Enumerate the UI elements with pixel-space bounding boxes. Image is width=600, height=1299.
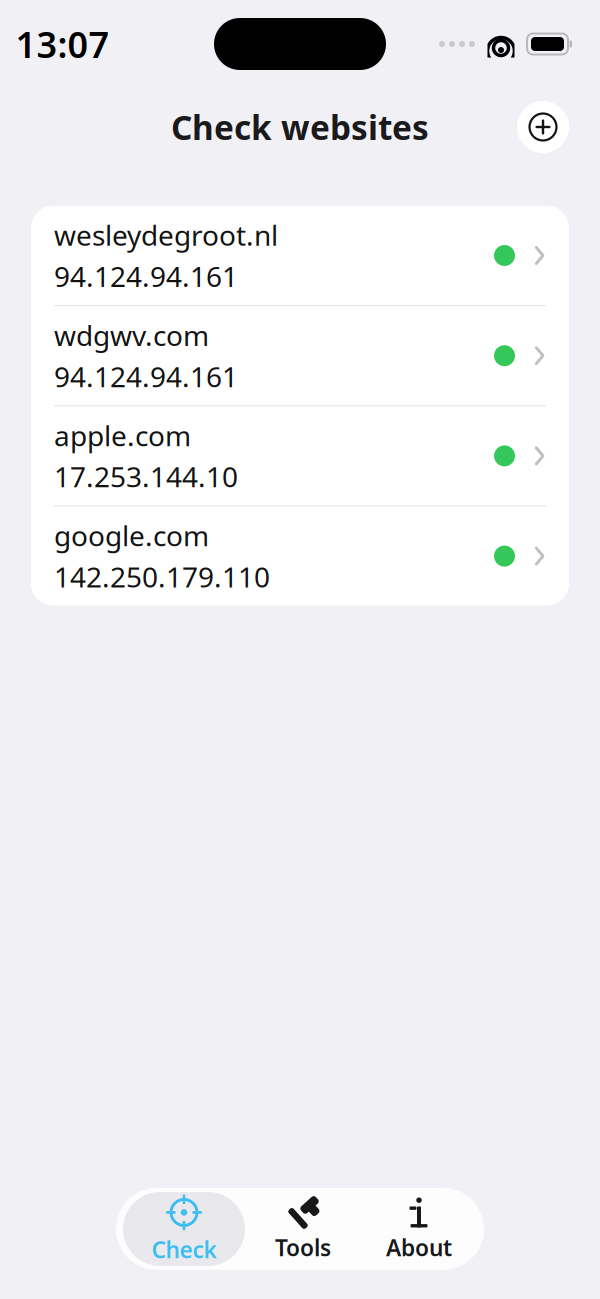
button[interactable]: wdgwv.com bbox=[31, 306, 569, 406]
button[interactable]: Add website bbox=[517, 101, 569, 153]
staticText: google.com bbox=[54, 517, 209, 554]
staticText: 94.124.94.161 bbox=[54, 257, 238, 295]
button[interactable]: apple.com bbox=[31, 406, 569, 507]
button[interactable]: google.com bbox=[31, 507, 569, 606]
staticText: Tools bbox=[275, 1232, 331, 1262]
staticText: wesleydegroot.nl bbox=[54, 216, 278, 253]
staticText: Check websites bbox=[171, 105, 429, 149]
button[interactable]: wesleydegroot.nl bbox=[31, 206, 569, 306]
staticText: 17.253.144.10 bbox=[54, 458, 238, 495]
staticText: 142.250.179.110 bbox=[54, 558, 270, 595]
button[interactable]: About bbox=[361, 1192, 477, 1266]
staticText: 94.124.94.161 bbox=[54, 358, 238, 395]
button[interactable]: Check bbox=[123, 1192, 245, 1266]
staticText: About bbox=[386, 1232, 452, 1262]
staticText: apple.com bbox=[54, 417, 191, 454]
staticText: Check bbox=[151, 1234, 216, 1264]
staticText: wdgwv.com bbox=[54, 316, 209, 354]
button[interactable]: Tools bbox=[245, 1192, 361, 1266]
staticText: 13:07 bbox=[15, 20, 109, 68]
